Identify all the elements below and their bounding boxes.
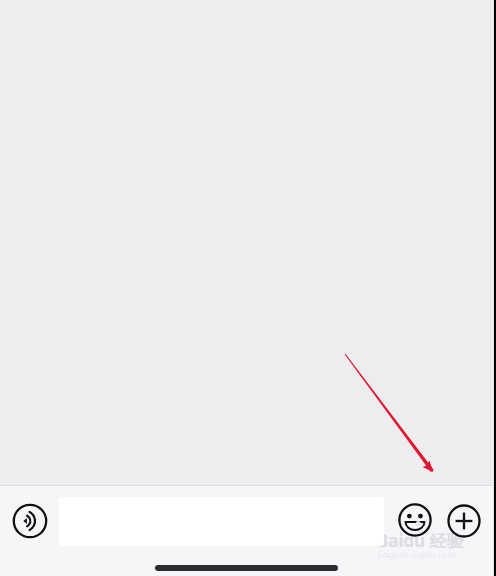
button[interactable]: Emoji bbox=[391, 496, 439, 544]
button[interactable]: More options bbox=[440, 497, 488, 545]
staticText: jingyan.baidu.com bbox=[378, 548, 456, 560]
staticText: Baidu 经验 bbox=[377, 529, 464, 552]
button[interactable]: Voice input bbox=[6, 497, 54, 545]
